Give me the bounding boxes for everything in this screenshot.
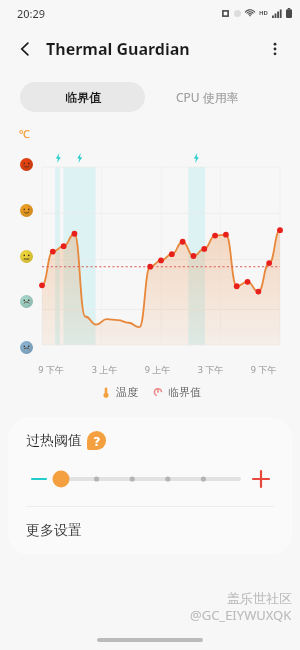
button[interactable]: 更多设置 — [8, 507, 292, 555]
staticText: @GC_EIYWUXQK — [190, 606, 292, 624]
staticText: 过热阈值 — [26, 432, 82, 450]
button[interactable]: Back — [8, 32, 42, 66]
button[interactable] — [52, 464, 248, 494]
staticText: 临界值 — [65, 90, 101, 105]
staticText: 20:29 — [17, 6, 46, 21]
staticText: 临界值 — [168, 385, 201, 399]
button[interactable]: 临界值 — [20, 82, 145, 112]
button[interactable]: CPU 使用率 — [145, 82, 270, 112]
staticText: 9 下午 — [237, 363, 290, 375]
staticText: ℃ — [19, 126, 30, 141]
staticText: 温度 — [116, 385, 138, 399]
staticText: Thermal Guardian — [46, 38, 190, 60]
button[interactable]: Increase — [248, 466, 274, 492]
button[interactable]: More options — [258, 32, 292, 66]
staticText: 3 上午 — [78, 363, 131, 375]
button[interactable]: Help — [87, 431, 106, 450]
button[interactable]: Decrease — [26, 466, 52, 492]
staticText: CPU 使用率 — [176, 89, 239, 105]
staticText: 9 上午 — [131, 363, 184, 375]
staticText: ? — [94, 433, 100, 449]
staticText: 更多设置 — [26, 522, 82, 540]
staticText: HD — [259, 9, 268, 17]
staticText: 9 下午 — [24, 363, 78, 375]
staticText: 3 下午 — [184, 363, 237, 375]
staticText: 盖乐世社区 — [227, 590, 292, 606]
